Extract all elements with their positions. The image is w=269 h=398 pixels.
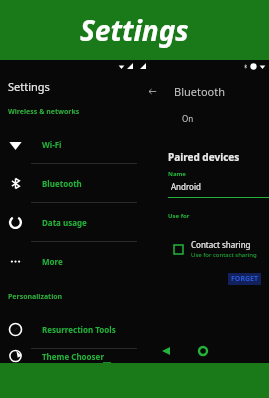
button[interactable]: Contact sharing: [174, 239, 269, 259]
button[interactable]: Back: [144, 83, 160, 99]
button[interactable]: Wi-Fi: [0, 125, 137, 164]
staticText: Bluetooth: [174, 84, 226, 99]
button[interactable]: FORGET: [228, 273, 261, 285]
staticText: Paired devices: [168, 150, 240, 164]
staticText: Theme Chooser: [42, 351, 104, 362]
staticText: More: [42, 256, 63, 267]
button[interactable]: Theme Chooser: [0, 349, 137, 363]
staticText: Personalization: [8, 292, 63, 302]
staticText: Wireless & networks: [8, 107, 80, 117]
staticText: FORGET: [231, 274, 258, 284]
staticText: Settings: [80, 11, 189, 49]
staticText: Android: [171, 181, 201, 192]
staticText: Data usage: [42, 217, 87, 228]
button[interactable]: Bluetooth: [0, 164, 137, 203]
button[interactable]: Data usage: [0, 203, 137, 242]
staticText: Use for: [168, 212, 190, 220]
staticText: Wi-Fi: [42, 139, 62, 150]
staticText: On: [182, 113, 194, 124]
button[interactable]: Resurrection Tools: [0, 310, 137, 349]
button[interactable]: Home: [194, 342, 212, 360]
staticText: Bluetooth: [42, 178, 82, 189]
staticText: Settings: [8, 79, 50, 94]
button[interactable]: Back: [157, 342, 175, 360]
button[interactable]: More: [0, 242, 137, 280]
staticText: Contact sharing: [191, 239, 251, 250]
staticText: Use for contact sharing: [191, 251, 257, 259]
staticText: Resurrection Tools: [42, 324, 116, 335]
staticText: Name: [168, 170, 186, 178]
